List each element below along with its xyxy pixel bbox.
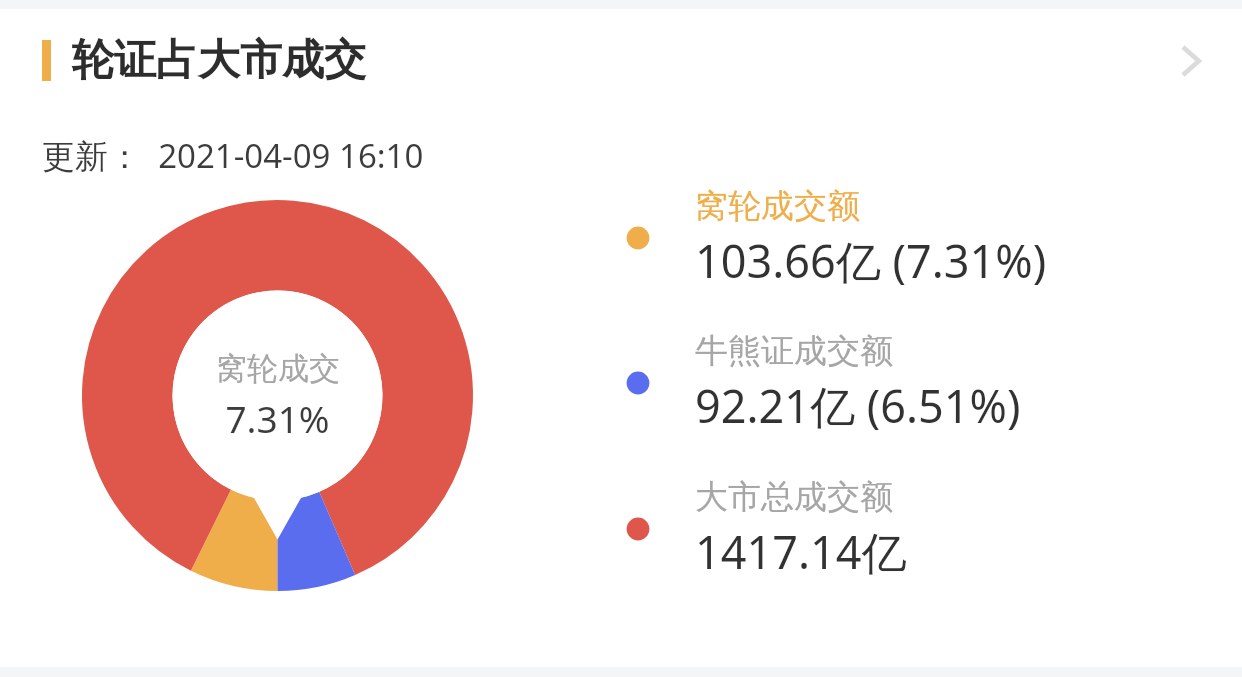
staticText: 7.31% [225, 393, 330, 443]
staticText: 103.66亿 (7.31%) [695, 230, 1047, 291]
staticText: 更新： 2021-04-09 16:10 [42, 133, 424, 178]
other: Open details [1148, 19, 1232, 103]
button[interactable]: 窝轮成交额 [618, 183, 1188, 293]
staticText: 轮证占大市成交 [72, 34, 366, 87]
staticText: 牛熊证成交额 [695, 330, 893, 372]
button[interactable]: 大市总成交额 [618, 474, 1188, 584]
button[interactable]: 牛熊证成交额 [618, 328, 1188, 438]
staticText: 窝轮成交 [216, 349, 340, 388]
staticText: 大市总成交额 [695, 476, 893, 518]
staticText: 窝轮成交额 [695, 185, 860, 227]
staticText: 92.21亿 (6.51%) [695, 375, 1021, 436]
button[interactable]: 轮证占大市成交 [0, 9, 1242, 112]
staticText: 1417.14亿 [695, 521, 907, 582]
